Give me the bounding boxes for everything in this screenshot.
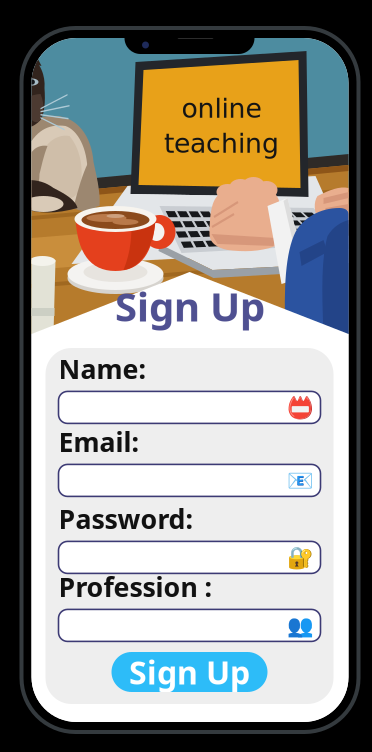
button[interactable]: 👥: [58, 609, 320, 641]
staticText: 🔐: [286, 545, 313, 570]
button[interactable]: Sign Up: [111, 652, 267, 692]
button[interactable]: 🔐: [58, 541, 320, 573]
staticText: Sign Up: [129, 651, 250, 693]
staticText: Email:: [58, 424, 138, 459]
staticText: Profession :: [58, 569, 211, 604]
staticText: teaching: [164, 128, 279, 159]
staticText: 📧: [286, 468, 313, 493]
staticText: Sign Up: [115, 279, 265, 332]
staticText: online: [181, 93, 261, 124]
staticText: 👥: [286, 613, 313, 638]
staticText: Password:: [58, 501, 192, 536]
button[interactable]: 📛: [58, 391, 320, 423]
button[interactable]: 📧: [58, 464, 320, 496]
staticText: Name:: [58, 351, 145, 386]
staticText: 📛: [286, 395, 313, 420]
